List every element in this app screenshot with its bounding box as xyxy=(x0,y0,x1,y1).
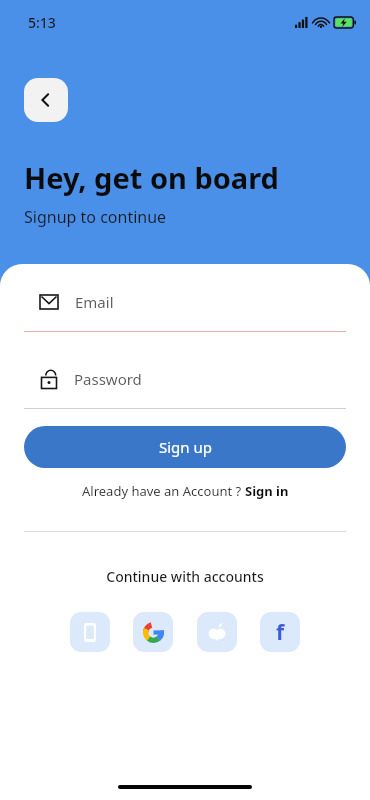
staticText: Email xyxy=(75,292,114,312)
staticText: Password xyxy=(74,369,142,389)
staticText: f xyxy=(276,618,285,647)
button[interactable]: Sign up with Google xyxy=(133,612,173,652)
staticText: 5:13 xyxy=(28,13,56,32)
button[interactable]: Back xyxy=(24,78,68,122)
button[interactable]: Sign up with phone xyxy=(70,612,110,652)
staticText: Sign in xyxy=(245,482,289,500)
button[interactable]: Email xyxy=(24,284,346,320)
staticText: Signup to continue xyxy=(24,206,167,228)
staticText: Continue with accounts xyxy=(0,567,370,586)
staticText: Sign up xyxy=(159,437,212,457)
button[interactable]: Already have an Account ? xyxy=(0,482,370,500)
button[interactable]: Sign up with Apple xyxy=(197,612,237,652)
staticText: Hey, get on board xyxy=(24,158,279,197)
staticText: Already have an Account ? xyxy=(82,482,245,500)
button[interactable]: Sign up xyxy=(24,426,346,468)
button[interactable]: Password xyxy=(24,361,346,397)
button[interactable]: Sign up with Facebook xyxy=(260,612,300,652)
